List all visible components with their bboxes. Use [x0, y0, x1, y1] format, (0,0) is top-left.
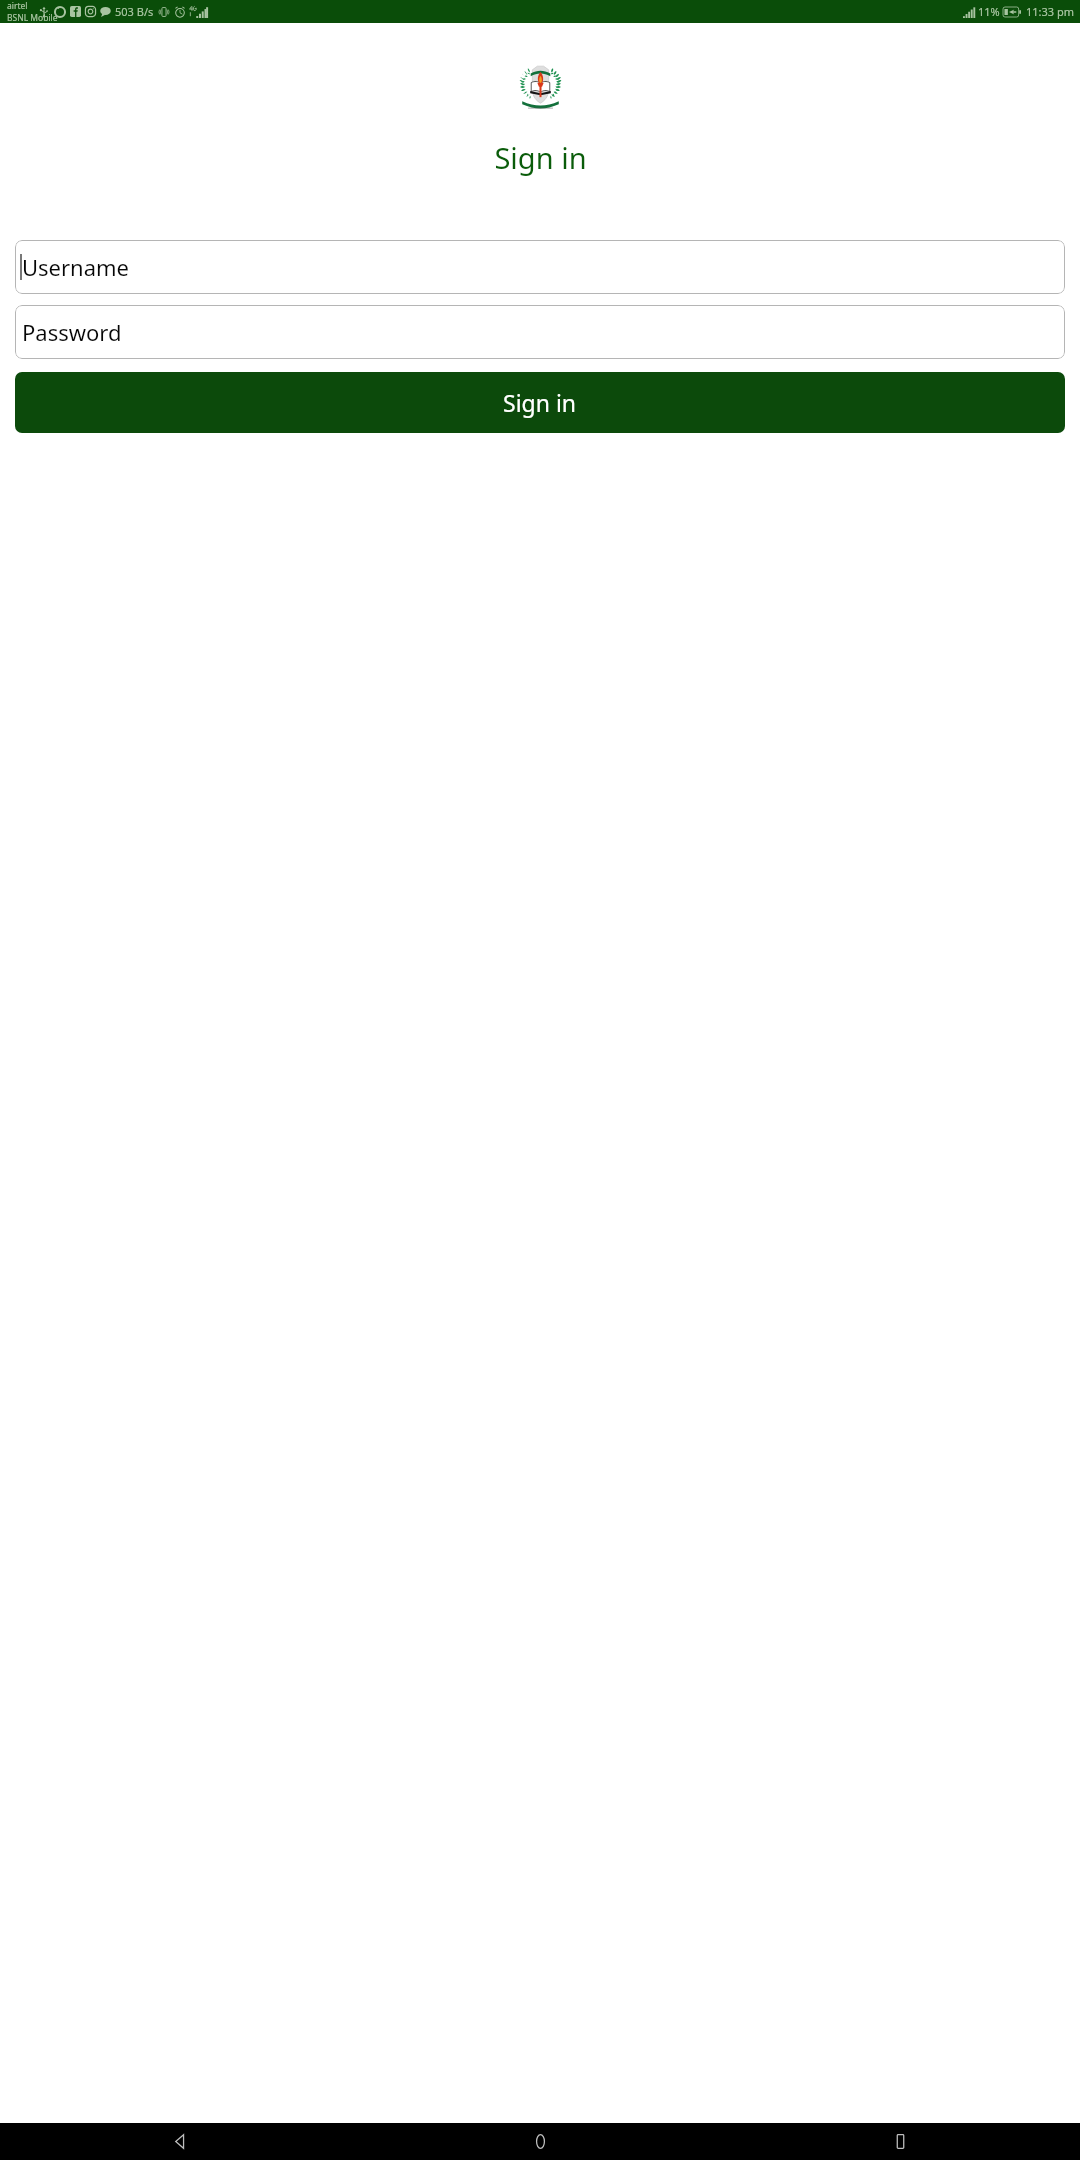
- staticText: Sign in: [494, 138, 587, 177]
- staticText: 503 B/s: [115, 4, 154, 19]
- button[interactable]: Username: [15, 240, 1065, 294]
- button[interactable]: Sign in: [15, 372, 1065, 433]
- button[interactable]: Back: [0, 2123, 360, 2160]
- button[interactable]: Home: [360, 2123, 720, 2160]
- button[interactable]: Recent apps: [720, 2123, 1080, 2160]
- staticText: Sign in: [503, 387, 577, 418]
- button[interactable]: Password: [15, 305, 1065, 359]
- staticText: Password: [22, 317, 122, 347]
- staticText: 11%: [978, 4, 1000, 19]
- staticText: airtel: [7, 0, 28, 12]
- staticText: BSNL Mobile: [7, 12, 58, 23]
- staticText: 11:33 pm: [1026, 4, 1075, 19]
- staticText: Username: [22, 252, 130, 282]
